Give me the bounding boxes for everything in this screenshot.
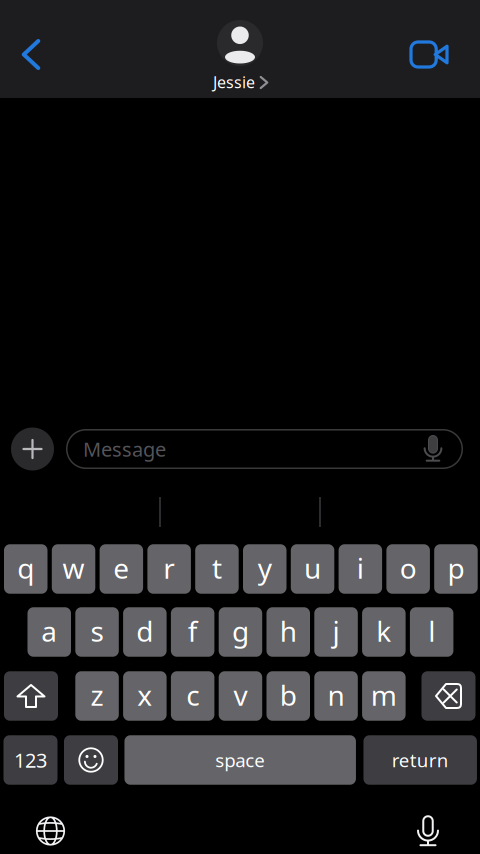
button[interactable]: y <box>243 544 286 594</box>
button[interactable]: Jessie, conversation details <box>206 20 274 94</box>
staticText: w <box>62 549 84 587</box>
button[interactable]: j <box>314 607 358 657</box>
button[interactable]: r <box>147 544 191 594</box>
staticText: m <box>371 676 397 714</box>
button[interactable]: e <box>100 544 143 594</box>
button[interactable]: w <box>52 544 95 594</box>
staticText: o <box>400 549 417 587</box>
button[interactable]: k <box>362 607 406 657</box>
staticText: g <box>232 612 249 650</box>
button[interactable]: Shift <box>4 671 58 721</box>
staticText: e <box>113 549 129 587</box>
button[interactable]: s <box>75 607 119 657</box>
staticText: u <box>304 549 321 587</box>
button[interactable]: Return <box>363 735 477 785</box>
staticText: s <box>90 612 103 650</box>
staticText: l <box>428 612 435 650</box>
button[interactable]: x <box>123 671 167 721</box>
button[interactable]: q <box>4 544 47 594</box>
staticText: v <box>233 676 247 714</box>
staticText: h <box>280 612 297 650</box>
button[interactable]: c <box>171 671 214 721</box>
staticText: q <box>17 549 34 587</box>
button[interactable]: Message text field <box>66 429 463 469</box>
staticText: r <box>163 549 175 587</box>
staticText: j <box>332 612 339 650</box>
staticText: z <box>90 676 103 714</box>
staticText: p <box>447 549 464 587</box>
button[interactable]: d <box>123 607 167 657</box>
button[interactable]: p <box>434 544 478 594</box>
button[interactable]: f <box>171 607 214 657</box>
staticText: b <box>280 676 297 714</box>
button[interactable]: u <box>291 544 334 594</box>
button[interactable]: Back <box>9 32 53 76</box>
button[interactable]: l <box>410 607 453 657</box>
button[interactable]: Dictation <box>406 809 450 853</box>
staticText: 123 <box>14 747 47 773</box>
button[interactable]: m <box>362 671 406 721</box>
button[interactable]: h <box>266 607 310 657</box>
staticText: d <box>136 612 153 650</box>
button[interactable]: Emoji <box>64 735 118 785</box>
staticText: Jessie <box>213 71 255 93</box>
button[interactable]: g <box>219 607 262 657</box>
button[interactable]: Dictate <box>416 430 450 468</box>
staticText: t <box>212 549 222 587</box>
staticText: n <box>328 676 345 714</box>
staticText: a <box>41 612 57 650</box>
button[interactable]: Space <box>124 735 356 785</box>
staticText: f <box>188 612 198 650</box>
staticText: return <box>392 748 449 772</box>
staticText: k <box>376 612 391 650</box>
button[interactable]: i <box>339 544 382 594</box>
staticText: x <box>137 676 152 714</box>
button[interactable]: o <box>386 544 430 594</box>
button[interactable]: z <box>75 671 119 721</box>
button[interactable]: Numbers <box>3 735 57 785</box>
button[interactable]: Apps <box>11 427 54 470</box>
button[interactable]: n <box>314 671 358 721</box>
button[interactable]: t <box>195 544 239 594</box>
staticText: c <box>186 676 199 714</box>
staticText: y <box>258 549 272 587</box>
staticText: space <box>215 748 265 772</box>
staticText: i <box>357 549 364 587</box>
button[interactable]: a <box>27 607 71 657</box>
button[interactable]: Next keyboard <box>28 809 72 853</box>
button[interactable]: Delete <box>421 671 475 721</box>
staticText: Message <box>83 436 166 462</box>
button[interactable]: v <box>219 671 262 721</box>
button[interactable]: b <box>266 671 310 721</box>
button[interactable]: FaceTime video call <box>405 32 453 76</box>
